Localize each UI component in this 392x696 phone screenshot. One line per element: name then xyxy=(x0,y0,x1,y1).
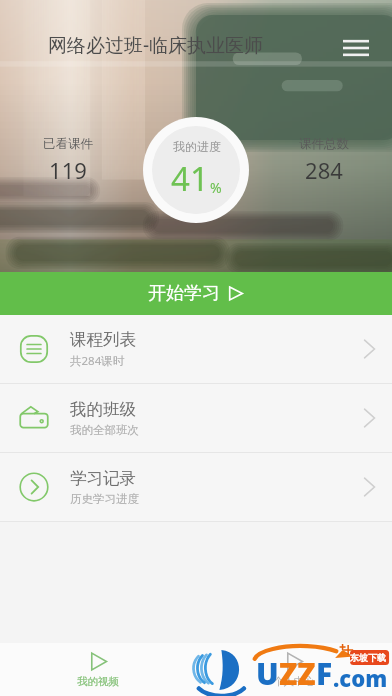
staticText: 119 xyxy=(49,155,87,185)
staticText: 我的视频 xyxy=(77,675,119,688)
staticText: 课件总数 xyxy=(299,136,349,152)
button[interactable]: 我的进度 xyxy=(143,117,249,223)
button[interactable]: 个人中心 xyxy=(196,643,392,696)
staticText: 个人中心 xyxy=(273,675,315,688)
staticText: 共284课时 xyxy=(70,353,125,369)
button[interactable]: 开始学习 xyxy=(0,272,392,315)
staticText: 我的班级 xyxy=(70,399,136,420)
staticText: % xyxy=(210,178,222,197)
staticText: 历史学习进度 xyxy=(70,492,139,506)
staticText: 开始学习 xyxy=(148,282,220,305)
staticText: 学习记录 xyxy=(70,468,136,489)
staticText: 我的进度 xyxy=(173,139,221,154)
staticText: 网络必过班-临床执业医师 xyxy=(48,32,264,58)
staticText: ZZ xyxy=(279,653,316,694)
button[interactable]: 学习记录 xyxy=(0,453,392,521)
staticText: .com xyxy=(333,663,388,693)
button[interactable]: 课程列表 xyxy=(0,315,392,383)
staticText: U xyxy=(256,653,279,694)
staticText: 已看课件 xyxy=(43,136,93,152)
staticText: F xyxy=(316,653,333,694)
staticText: 41 xyxy=(171,156,209,201)
button[interactable]: 我的视频 xyxy=(0,643,196,696)
button[interactable]: Menu xyxy=(334,26,378,70)
staticText: 东坡下载 xyxy=(350,652,386,663)
staticText: 284 xyxy=(305,155,343,185)
button[interactable]: 我的班级 xyxy=(0,384,392,452)
staticText: 课程列表 xyxy=(70,329,136,350)
staticText: 我的全部班次 xyxy=(70,423,139,437)
